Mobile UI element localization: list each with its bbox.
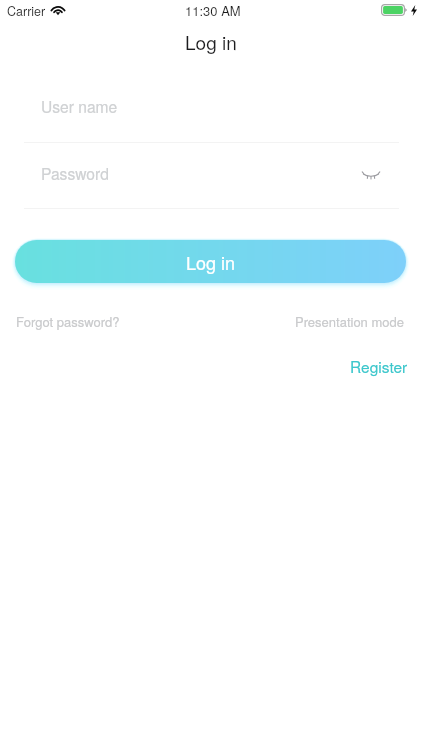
staticText: Log in [186,249,236,275]
button[interactable]: Password [0,142,422,209]
button[interactable]: Presentation mode [287,304,412,339]
button[interactable]: Register [342,347,416,385]
staticText: Forgot password? [16,312,120,331]
staticText: Register [350,355,408,377]
staticText: Password [41,162,109,184]
staticText: User name [41,95,118,117]
button[interactable]: Show password [351,153,391,195]
staticText: Presentation mode [295,312,404,331]
staticText: Log in [185,28,237,54]
button[interactable]: Log in [15,240,406,283]
button[interactable]: User name [0,76,422,142]
staticText: Carrier [7,2,46,20]
staticText: 11:30 AM [185,1,241,20]
button[interactable]: Forgot password? [8,304,128,339]
